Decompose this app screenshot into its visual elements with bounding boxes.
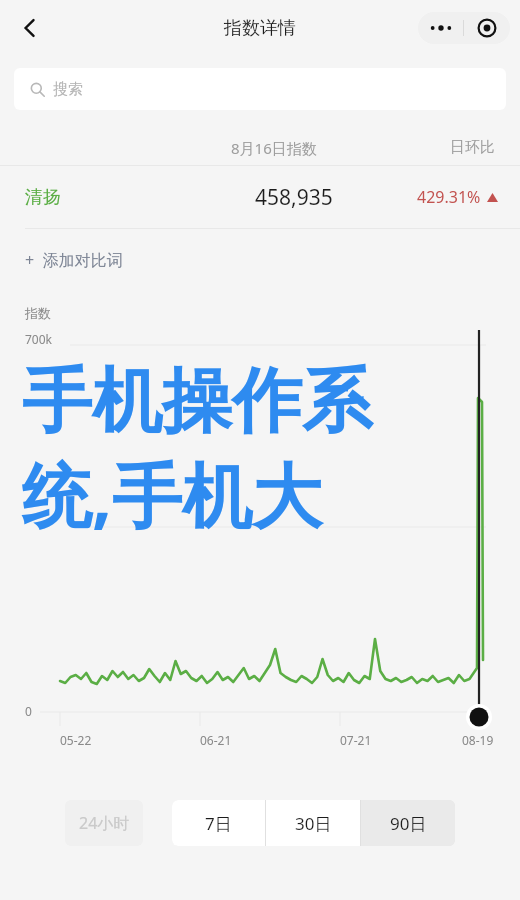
staticText: 06-21: [200, 732, 232, 748]
staticText: 8月16日指数: [231, 138, 317, 158]
staticText: 429.31%: [417, 186, 481, 208]
button[interactable]: Target: [464, 12, 510, 44]
staticText: 90日: [390, 812, 427, 835]
button[interactable]: Back: [8, 6, 52, 50]
staticText: 07-21: [340, 732, 372, 748]
button[interactable]: + 添加对比词: [0, 229, 520, 291]
staticText: 05-22: [60, 732, 92, 748]
staticText: 指数: [25, 305, 51, 321]
button[interactable]: 搜索: [14, 68, 506, 110]
staticText: 458,935: [255, 183, 333, 212]
staticText: 手机操作系: [22, 358, 372, 446]
button[interactable]: More: [418, 12, 463, 44]
staticText: 24小时: [79, 812, 130, 834]
staticText: 700k: [25, 331, 53, 347]
staticText: 清扬: [25, 186, 61, 209]
button[interactable]: 90日: [361, 800, 455, 846]
staticText: 0: [25, 703, 32, 719]
button[interactable]: 7日: [172, 800, 265, 846]
staticText: 搜索: [53, 80, 83, 99]
staticText: 指数详情: [224, 17, 296, 40]
staticText: 08-19: [462, 732, 494, 748]
button[interactable]: 24小时: [65, 800, 143, 846]
staticText: 30日: [295, 812, 332, 835]
button[interactable]: 30日: [266, 800, 360, 846]
staticText: 统,手机大: [22, 446, 322, 542]
staticText: 日环比: [450, 138, 495, 157]
staticText: + 添加对比词: [25, 249, 123, 271]
staticText: 7日: [205, 812, 232, 835]
button[interactable]: 清扬: [0, 166, 520, 228]
